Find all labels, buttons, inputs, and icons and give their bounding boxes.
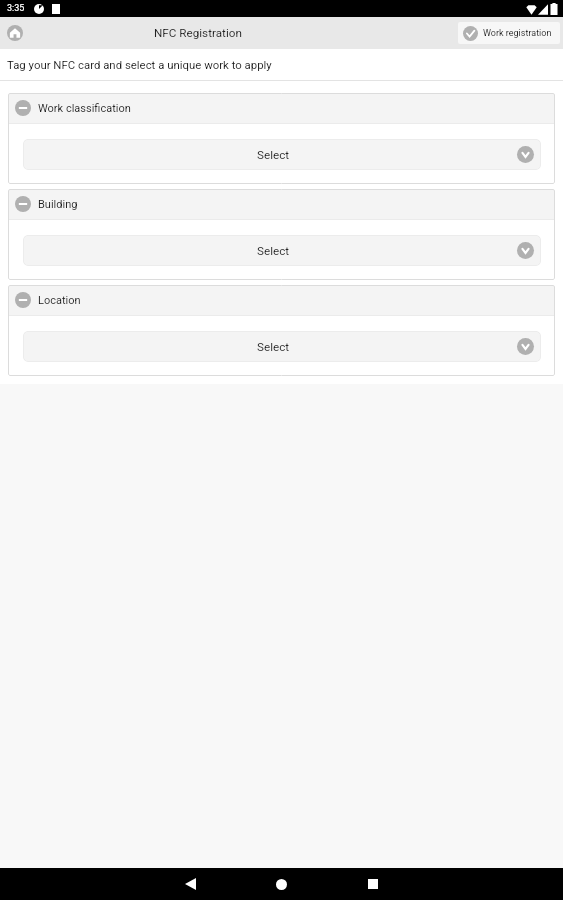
staticText: Location <box>38 294 81 307</box>
button[interactable]: Location <box>8 285 555 315</box>
button[interactable]: Work registration <box>458 22 560 44</box>
button[interactable]: Work classification <box>8 93 555 123</box>
button[interactable]: Building <box>8 189 555 219</box>
staticText: Select <box>257 244 290 258</box>
button[interactable]: Select <box>23 331 541 362</box>
staticText: Select <box>257 340 290 354</box>
button[interactable]: Recent apps <box>327 868 418 900</box>
button[interactable]: Select <box>23 235 541 266</box>
staticText: Work classification <box>38 102 131 115</box>
staticText: Tag your NFC card and select a unique wo… <box>7 58 272 71</box>
staticText: Building <box>38 198 78 211</box>
button[interactable]: Select <box>23 139 541 170</box>
staticText: NFC Registration <box>154 26 242 40</box>
button[interactable]: Home <box>4 22 26 44</box>
button[interactable]: Back <box>145 868 236 900</box>
staticText: Work registration <box>483 28 552 39</box>
staticText: Select <box>257 148 290 162</box>
button[interactable]: Home <box>236 868 327 900</box>
staticText: 3:35 <box>7 3 25 14</box>
